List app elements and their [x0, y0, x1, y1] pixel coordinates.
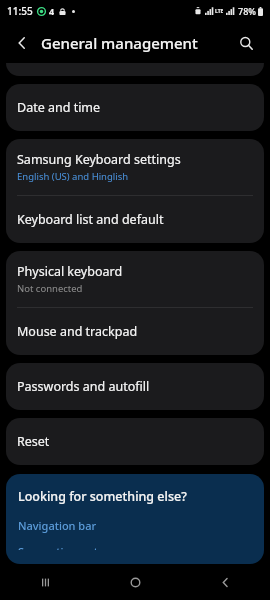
button[interactable]: [6, 63, 264, 76]
staticText: Samsung Keyboard settings: [17, 151, 181, 168]
staticText: 11:55: [7, 4, 33, 18]
button[interactable]: Screen timeout: [18, 544, 99, 550]
staticText: Navigation bar: [18, 518, 97, 533]
staticText: 78%: [238, 5, 256, 17]
button[interactable]: Reset: [6, 418, 264, 465]
staticText: 4: [49, 5, 55, 17]
button[interactable]: Back: [203, 564, 247, 600]
staticText: Keyboard list and default: [17, 211, 164, 228]
staticText: Looking for something else?: [18, 488, 187, 505]
staticText: Date and time: [17, 99, 101, 116]
button[interactable]: Recent apps: [23, 564, 67, 600]
button[interactable]: Date and time: [6, 84, 264, 131]
staticText: Physical keyboard: [17, 263, 123, 280]
button[interactable]: Samsung Keyboard settings: [6, 139, 264, 195]
staticText: LTE: [215, 8, 224, 15]
button[interactable]: Keyboard list and default: [6, 196, 264, 243]
staticText: English (US) and Hinglish: [17, 170, 129, 183]
staticText: Passwords and autofill: [17, 378, 150, 395]
button[interactable]: Home: [113, 564, 157, 600]
staticText: General management: [41, 33, 198, 53]
staticText: Reset: [17, 433, 50, 450]
button[interactable]: Physical keyboard: [6, 251, 264, 307]
button[interactable]: Search: [233, 30, 259, 56]
button[interactable]: Back: [9, 30, 35, 56]
staticText: Mouse and trackpad: [17, 323, 138, 340]
staticText: Screen timeout: [18, 544, 99, 550]
button[interactable]: Navigation bar: [18, 518, 97, 533]
button[interactable]: Mouse and trackpad: [6, 308, 264, 355]
button[interactable]: Passwords and autofill: [6, 363, 264, 410]
staticText: Not connected: [17, 282, 83, 295]
